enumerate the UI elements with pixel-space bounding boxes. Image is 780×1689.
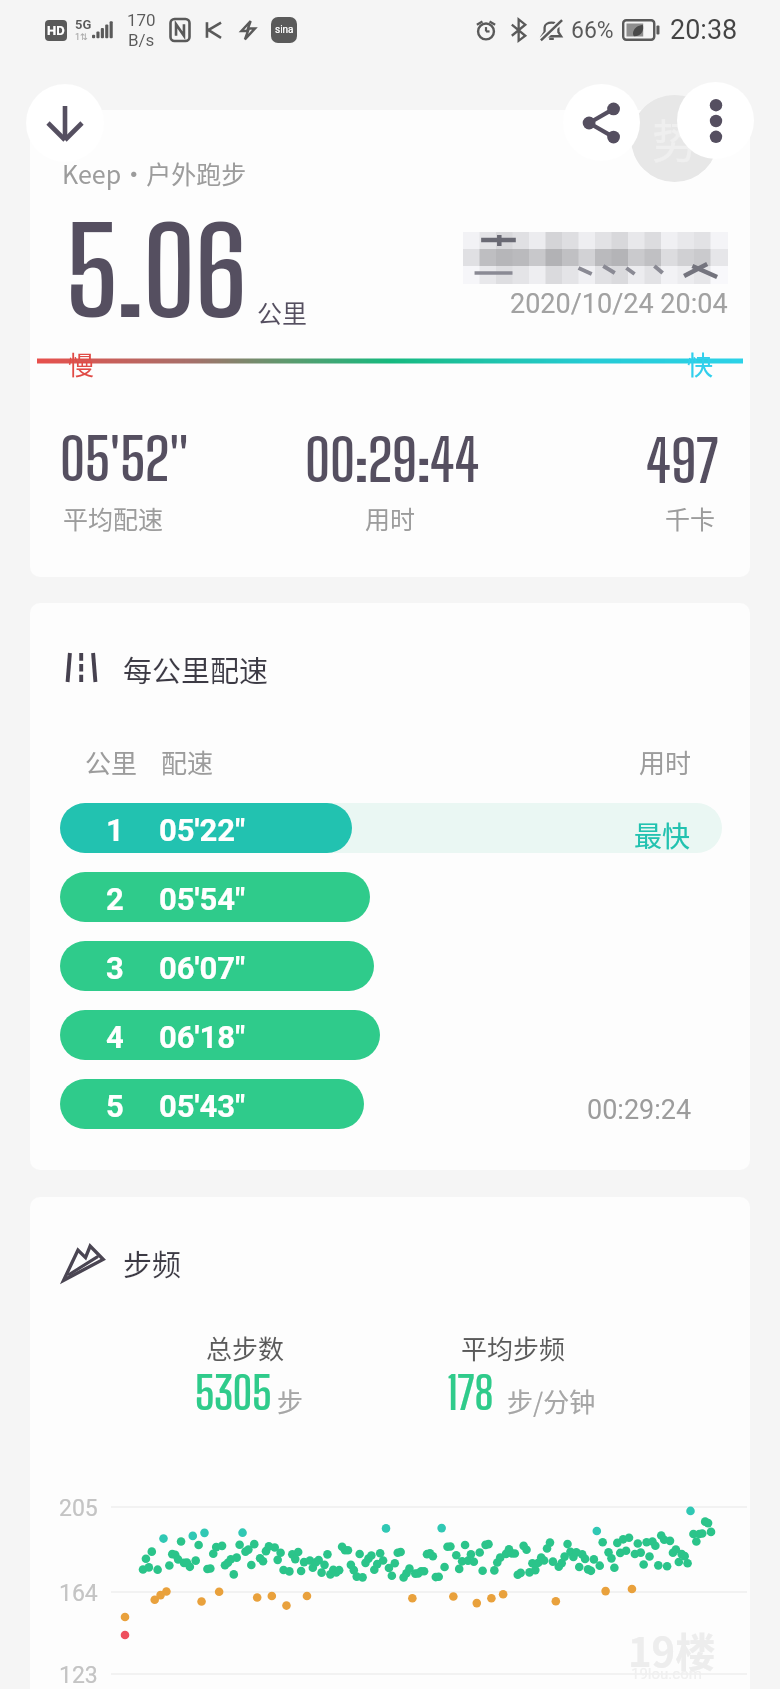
staticText: sina (275, 24, 294, 36)
staticText: 配速 (161, 743, 214, 781)
staticText: 05'22" (159, 812, 246, 848)
staticText: B/s (128, 30, 155, 50)
button[interactable]: 5 (60, 1079, 364, 1129)
staticText: 00:29:24 (587, 1094, 692, 1126)
staticText: 497 (646, 426, 719, 495)
staticText: 最快 (634, 815, 691, 856)
staticText: 178 (447, 1367, 494, 1420)
staticText: 205 (59, 1495, 98, 1522)
staticText: 05'43" (159, 1088, 246, 1124)
staticText: 170 (127, 10, 156, 30)
staticText: 06'18" (159, 1019, 246, 1055)
staticText: 19楼 (628, 1621, 716, 1679)
staticText: 平均配速 (63, 500, 164, 536)
button[interactable]: 2 (60, 872, 370, 922)
staticText: 00:29:44 (305, 426, 480, 494)
staticText: 步频 (123, 1242, 182, 1284)
staticText: 势 (652, 105, 698, 172)
button[interactable]: Download (26, 84, 104, 162)
staticText: 5 (106, 1088, 124, 1124)
staticText: 164 (59, 1580, 98, 1607)
staticText: 步 (277, 1382, 304, 1420)
staticText: 用时 (365, 500, 416, 536)
staticText: 总步数 (206, 1329, 285, 1367)
staticText: 20:38 (670, 14, 738, 46)
staticText: 2 (106, 881, 124, 917)
staticText: 快 (687, 345, 714, 383)
staticText: 每公里配速 (123, 648, 269, 690)
staticText: 5G (75, 17, 92, 32)
staticText: 步/分钟 (507, 1382, 596, 1420)
staticText: 1 (106, 812, 124, 848)
staticText: 千卡 (665, 500, 716, 536)
staticText: 06'07" (159, 950, 246, 986)
staticText: 1⇅ (75, 32, 88, 43)
staticText: 66% (571, 17, 614, 44)
staticText: 用时 (639, 743, 692, 781)
button[interactable]: 1 (60, 803, 352, 853)
staticText: 5305 (195, 1367, 272, 1420)
staticText: 19lou.com (631, 1665, 702, 1683)
staticText: HD (47, 23, 65, 38)
button[interactable]: 4 (60, 1010, 380, 1060)
staticText: 5.06 (66, 201, 247, 342)
staticText: 05'54" (159, 881, 246, 917)
staticText: 慢 (68, 345, 95, 383)
staticText: 05'52" (60, 425, 189, 493)
button[interactable]: More options (677, 82, 754, 159)
staticText: 123 (59, 1662, 98, 1689)
staticText: 公里 (85, 743, 138, 781)
button[interactable]: Share (563, 84, 640, 161)
staticText: 3 (106, 950, 124, 986)
staticText: 平均步频 (461, 1329, 566, 1367)
staticText: 2020/10/24 20:04 (510, 288, 728, 320)
staticText: 公里 (257, 294, 308, 330)
staticText: 4 (106, 1019, 124, 1055)
staticText: Keep·户外跑步 (62, 155, 247, 191)
button[interactable]: 3 (60, 941, 374, 991)
